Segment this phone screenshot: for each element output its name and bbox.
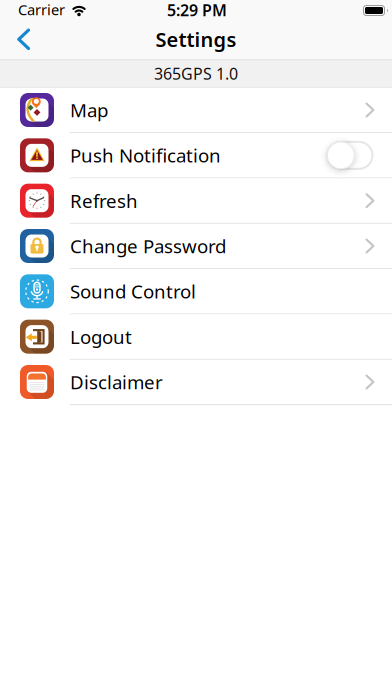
staticText: Change Password bbox=[70, 234, 226, 258]
button[interactable]: Disclaimer bbox=[0, 360, 392, 405]
staticText: 5:29 PM bbox=[167, 0, 227, 21]
button[interactable]: Refresh bbox=[0, 178, 392, 224]
staticText: Settings bbox=[155, 26, 236, 53]
staticText: Map bbox=[70, 98, 108, 122]
button[interactable]: Change Password bbox=[0, 224, 392, 269]
staticText: Disclaimer bbox=[70, 370, 163, 394]
button[interactable]: Map bbox=[0, 88, 392, 133]
staticText: Sound Control bbox=[70, 279, 196, 304]
staticText: Logout bbox=[70, 324, 132, 349]
staticText: Refresh bbox=[70, 188, 138, 213]
button[interactable]: Back bbox=[0, 19, 30, 59]
button[interactable]: Push Notification bbox=[326, 141, 392, 170]
button[interactable]: Sound Control bbox=[0, 269, 392, 314]
staticText: Push Notification bbox=[70, 143, 221, 168]
staticText: Carrier bbox=[18, 0, 65, 19]
staticText: 365GPS 1.0 bbox=[154, 63, 238, 84]
button[interactable]: Logout bbox=[0, 314, 392, 360]
